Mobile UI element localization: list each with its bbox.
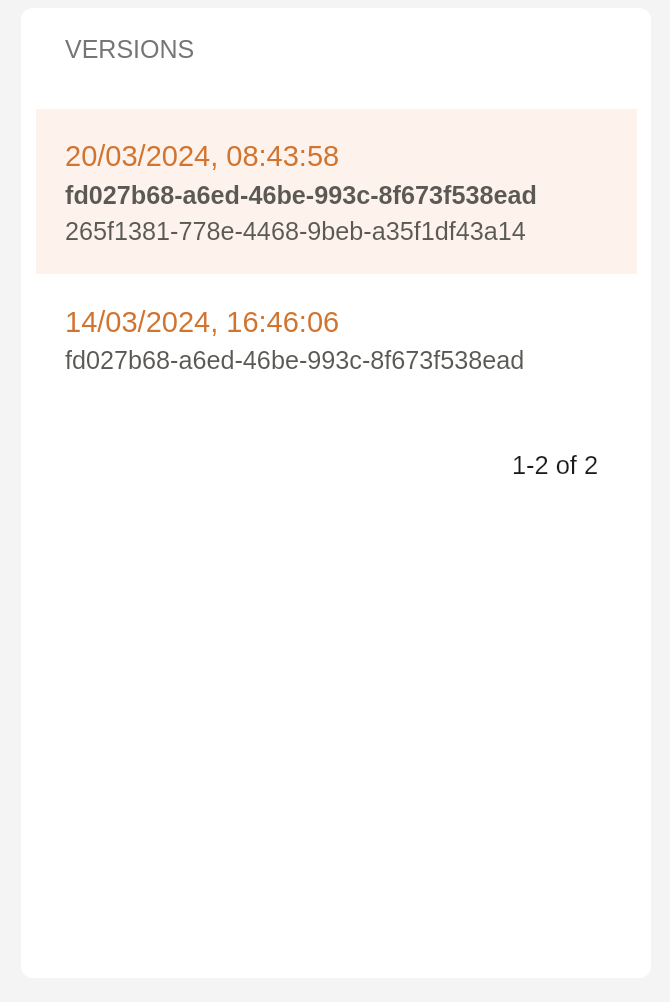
staticText: VERSIONS (65, 35, 195, 63)
staticText: fd027b68-a6ed-46be-993c-8f673f538ead (65, 346, 525, 374)
button[interactable]: 14/03/2024, 16:46:06 (36, 290, 637, 400)
staticText: 1-2 of 2 (512, 451, 599, 479)
staticText: 265f1381-778e-4468-9beb-a35f1df43a14 (65, 217, 526, 245)
button[interactable]: 20/03/2024, 08:43:58 (36, 109, 637, 274)
staticText: 14/03/2024, 16:46:06 (65, 306, 340, 338)
staticText: 20/03/2024, 08:43:58 (65, 140, 340, 172)
staticText: fd027b68-a6ed-46be-993c-8f673f538ead (65, 181, 537, 209)
